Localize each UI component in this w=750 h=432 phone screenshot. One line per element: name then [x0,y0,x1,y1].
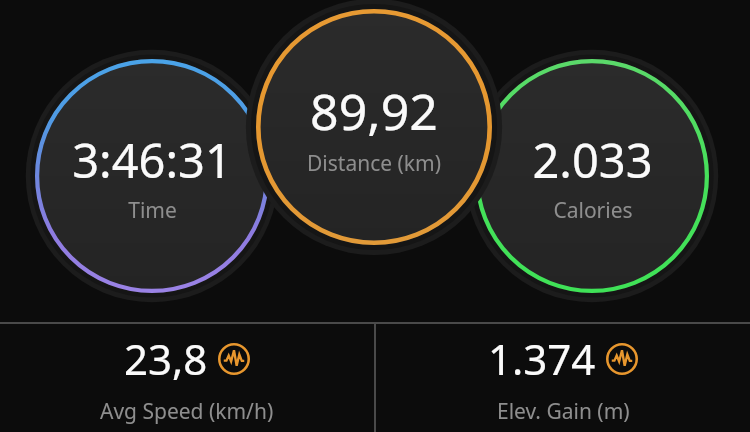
button[interactable]: 3:46:31 [35,59,269,293]
staticText: Avg Speed (km/h) [100,397,274,426]
staticText: 1.374 [488,330,596,387]
staticText: Time [128,196,177,225]
staticText: 3:46:31 [72,128,232,192]
button[interactable]: 2.033 [475,59,709,293]
other: Live metric [606,343,638,375]
staticText: 23,8 [124,330,208,387]
staticText: Calories [553,196,633,225]
staticText: 2.033 [532,128,653,192]
button[interactable]: 89,92 [256,9,492,245]
staticText: Elev. Gain (m) [497,397,630,426]
staticText: 89,92 [310,77,438,145]
button[interactable]: 23,8 [0,324,374,432]
other: Live metric [218,343,250,375]
staticText: Distance (km) [307,149,441,178]
button[interactable]: 1.374 [376,324,750,432]
